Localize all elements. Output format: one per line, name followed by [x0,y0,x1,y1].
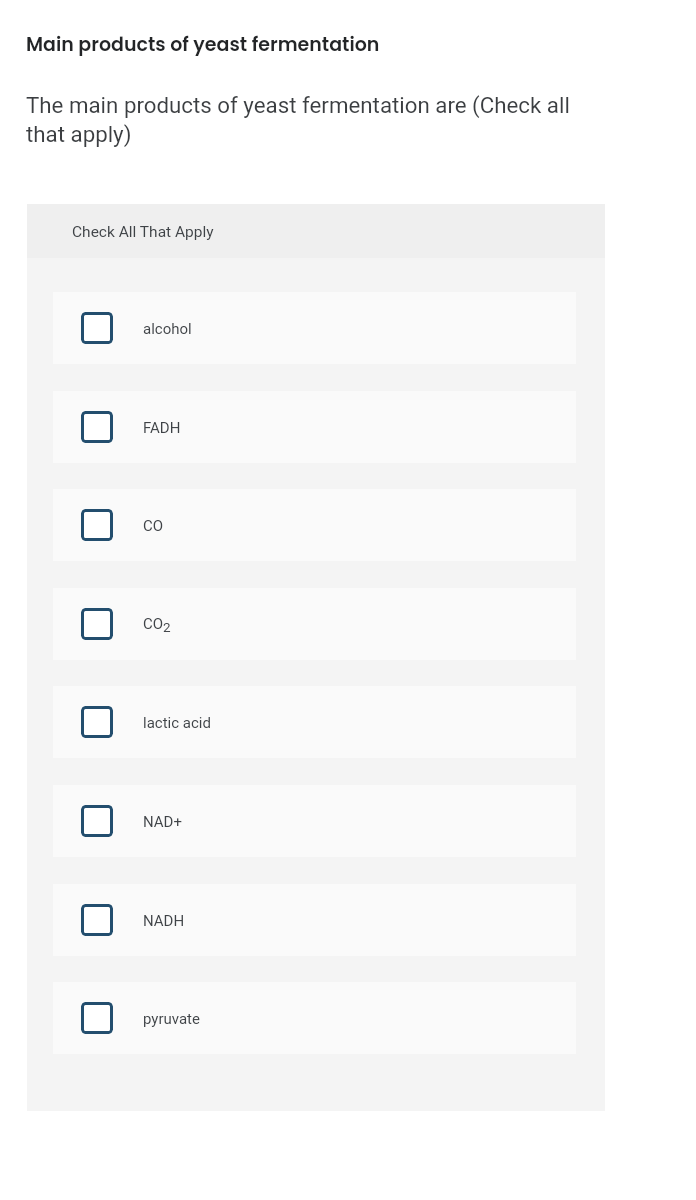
button[interactable]: Select CO [81,509,113,541]
button[interactable]: Select CO2 [53,588,576,660]
staticText: FADH [143,419,181,437]
button[interactable]: Select NAD+ [81,805,113,837]
button[interactable]: Select NADH [81,904,113,936]
staticText: CO2 [143,615,171,635]
staticText: The main products of yeast fermentation … [26,92,574,147]
staticText: Main products of yeast fermentation [26,31,380,58]
button[interactable]: Select NADH [53,884,576,956]
button[interactable]: Select alcohol [53,292,576,364]
button[interactable]: Select lactic acid [81,706,113,738]
button[interactable]: Select FADH [53,391,576,463]
staticText: pyruvate [143,1010,200,1028]
button[interactable]: Select FADH [81,411,113,443]
button[interactable]: Check All That Apply [27,204,605,258]
button[interactable]: Select alcohol [81,312,113,344]
staticText: CO [143,517,164,535]
button[interactable]: Select pyruvate [81,1002,113,1034]
button[interactable]: Select lactic acid [53,686,576,758]
button[interactable]: Select CO2 [81,608,113,640]
staticText: Check All That Apply [72,223,214,241]
staticText: alcohol [143,320,192,338]
staticText: NAD+ [143,813,182,831]
button[interactable]: Select CO [53,489,576,561]
button[interactable]: Select pyruvate [53,982,576,1054]
staticText: NADH [143,912,185,930]
staticText: lactic acid [143,714,211,732]
button[interactable]: Select NAD+ [53,785,576,857]
